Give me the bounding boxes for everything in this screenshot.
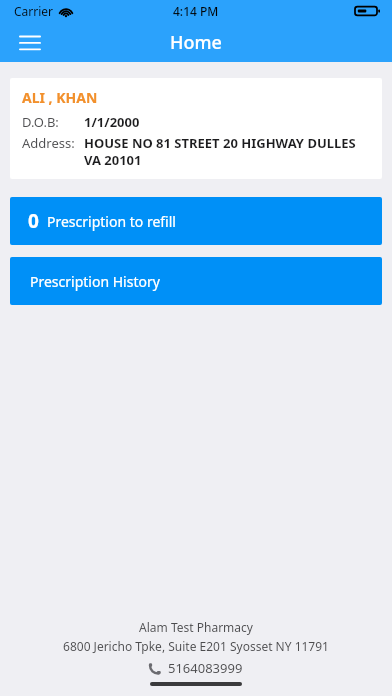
staticText: 1/1/2000 — [84, 113, 140, 131]
staticText: HOUSE NO 81 STREET 20 HIGHWAY DULLES VA … — [84, 134, 370, 169]
staticText: Address: — [22, 134, 75, 152]
staticText: 0 — [28, 208, 39, 234]
button[interactable]: Menu — [10, 22, 50, 62]
staticText: Alam Test Pharmacy — [139, 619, 253, 635]
staticText: Prescription History — [30, 272, 160, 291]
staticText: Prescription to refill — [47, 212, 176, 231]
staticText: 5164083999 — [168, 659, 243, 677]
staticText: 4:14 PM — [173, 3, 219, 19]
button[interactable]: ALI , KHAN — [10, 78, 382, 179]
staticText: Carrier — [14, 3, 54, 19]
staticText: ALI , KHAN — [22, 88, 98, 107]
button[interactable]: 0 — [10, 197, 382, 245]
staticText: 6800 Jericho Tpke, Suite E201 Syosset NY… — [63, 638, 329, 654]
button[interactable]: Prescription History — [10, 257, 382, 305]
staticText: D.O.B: — [22, 113, 59, 131]
staticText: Home — [170, 30, 222, 55]
button[interactable]: 5164083999 — [143, 658, 249, 678]
